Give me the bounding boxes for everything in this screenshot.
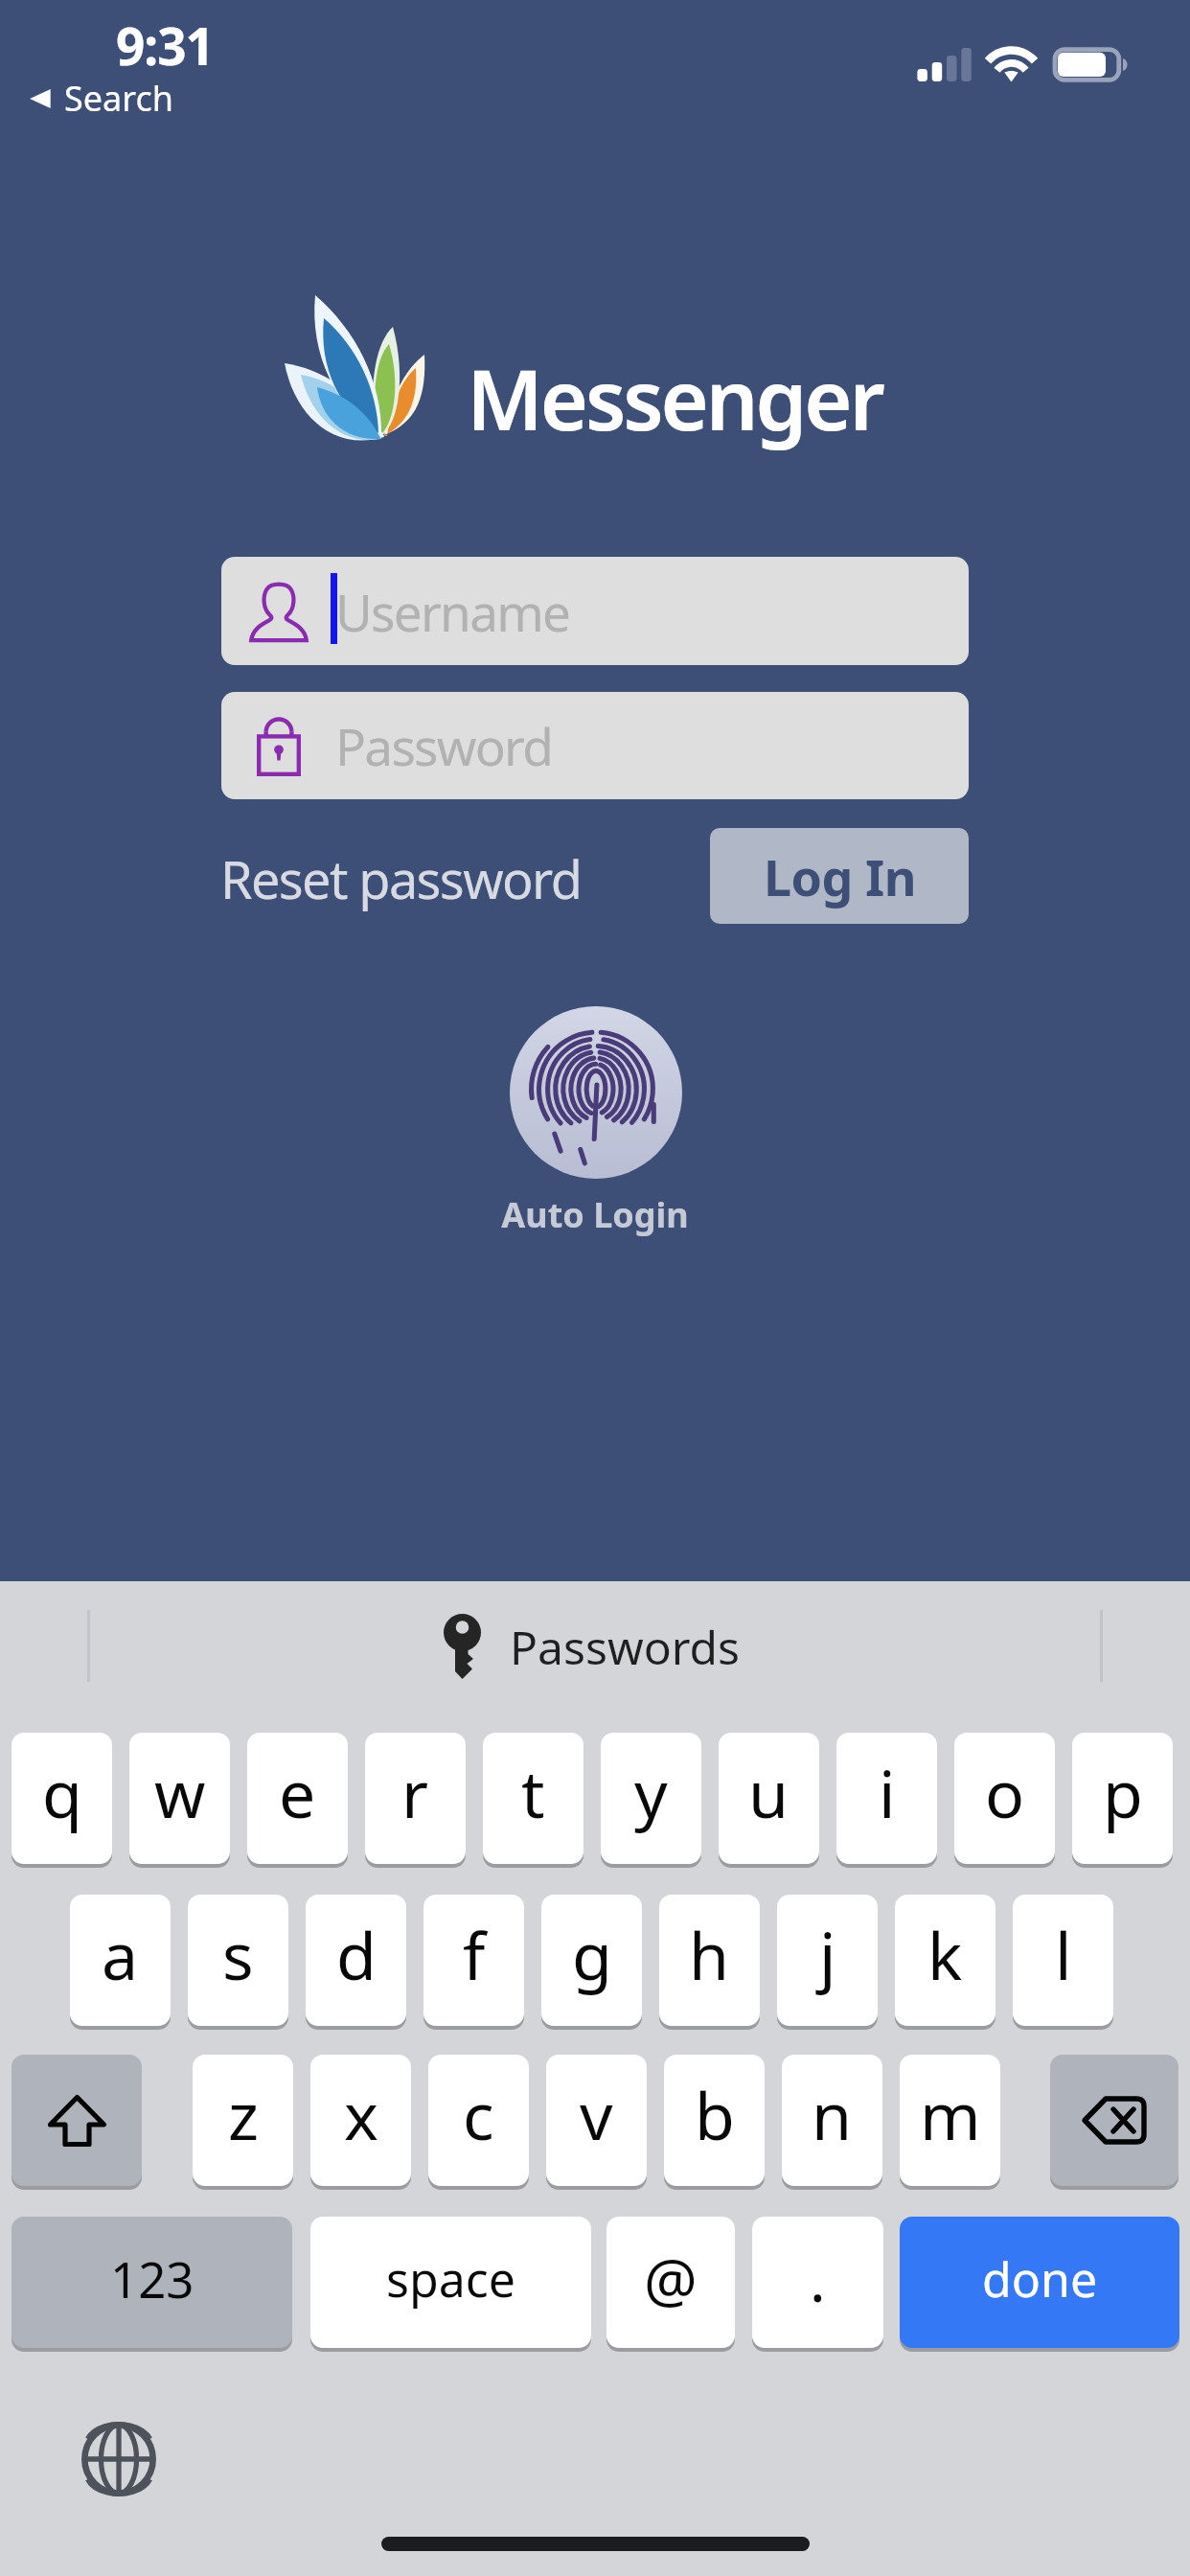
staticText: . — [810, 2239, 826, 2319]
staticText: g — [572, 1910, 612, 1999]
button[interactable]: n — [782, 2055, 882, 2186]
staticText: l — [1055, 1910, 1072, 1999]
button[interactable]: t — [483, 1733, 584, 1864]
button[interactable]: q — [11, 1733, 112, 1864]
button[interactable]: z — [193, 2055, 293, 2186]
staticText: i — [879, 1748, 896, 1837]
button[interactable]: l — [1013, 1895, 1113, 2026]
staticText: done — [982, 2246, 1098, 2311]
staticText: q — [42, 1748, 82, 1837]
button[interactable]: h — [659, 1895, 760, 2026]
staticText: n — [812, 2070, 853, 2159]
button[interactable]: Search — [27, 75, 173, 122]
staticText: r — [401, 1748, 429, 1837]
staticText: space — [386, 2246, 515, 2311]
button[interactable]: Backspace — [1050, 2055, 1179, 2186]
staticText: Search — [64, 75, 173, 122]
staticText: Username — [335, 577, 570, 646]
staticText: e — [279, 1748, 316, 1837]
button[interactable]: e — [247, 1733, 348, 1864]
button[interactable]: a — [70, 1895, 171, 2026]
button[interactable]: w — [129, 1733, 230, 1864]
button[interactable]: Log In — [710, 828, 969, 924]
staticText: b — [695, 2070, 735, 2159]
staticText: w — [154, 1748, 206, 1837]
staticText: h — [689, 1910, 730, 1999]
button[interactable]: Auto Login with fingerprint — [510, 1006, 682, 1179]
staticText: Reset password — [220, 843, 582, 914]
staticText: d — [336, 1910, 377, 1999]
button[interactable]: y — [601, 1733, 701, 1864]
button[interactable]: 123 — [11, 2217, 292, 2348]
button[interactable]: g — [541, 1895, 642, 2026]
staticText: u — [748, 1748, 790, 1837]
button[interactable]: Passwords — [444, 1614, 741, 1679]
button[interactable]: p — [1072, 1733, 1173, 1864]
staticText: y — [634, 1748, 668, 1837]
staticText: j — [819, 1910, 836, 1999]
staticText: 123 — [110, 2245, 195, 2311]
staticText: f — [463, 1910, 486, 1999]
staticText: @ — [644, 2239, 698, 2319]
staticText: m — [920, 2070, 981, 2159]
staticText: c — [463, 2070, 494, 2159]
button[interactable]: Password — [221, 692, 969, 799]
staticText: k — [927, 1910, 963, 1999]
staticText: a — [102, 1910, 139, 1999]
button[interactable]: . — [752, 2217, 883, 2348]
button[interactable]: r — [365, 1733, 466, 1864]
button[interactable]: Username — [221, 557, 969, 665]
staticText: Auto Login — [501, 1191, 689, 1238]
staticText: s — [222, 1910, 254, 1999]
staticText: t — [521, 1748, 545, 1837]
button[interactable]: u — [719, 1733, 819, 1864]
button[interactable]: Switch keyboard language — [81, 2422, 156, 2496]
button[interactable]: i — [836, 1733, 937, 1864]
button[interactable]: @ — [606, 2217, 735, 2348]
button[interactable]: space — [310, 2217, 591, 2348]
button[interactable]: x — [310, 2055, 411, 2186]
button[interactable]: Reset password — [220, 831, 584, 927]
button[interactable]: k — [895, 1895, 995, 2026]
button[interactable]: v — [546, 2055, 647, 2186]
button[interactable]: o — [954, 1733, 1055, 1864]
staticText: Passwords — [510, 1616, 741, 1678]
staticText: o — [985, 1748, 1025, 1837]
button[interactable]: d — [306, 1895, 406, 2026]
button[interactable]: Shift — [11, 2055, 142, 2186]
button[interactable]: j — [777, 1895, 878, 2026]
staticText: z — [228, 2070, 259, 2159]
button[interactable]: c — [428, 2055, 529, 2186]
staticText: 9:31 — [116, 11, 214, 80]
staticText: Log In — [764, 842, 916, 910]
staticText: p — [1103, 1748, 1143, 1837]
button[interactable]: done — [900, 2217, 1179, 2348]
staticText: Messenger — [467, 342, 882, 454]
button[interactable]: s — [188, 1895, 288, 2026]
button[interactable]: b — [664, 2055, 765, 2186]
button[interactable]: m — [900, 2055, 1000, 2186]
button[interactable]: f — [423, 1895, 524, 2026]
staticText: x — [344, 2070, 378, 2159]
staticText: v — [580, 2070, 613, 2159]
staticText: Password — [335, 711, 553, 780]
